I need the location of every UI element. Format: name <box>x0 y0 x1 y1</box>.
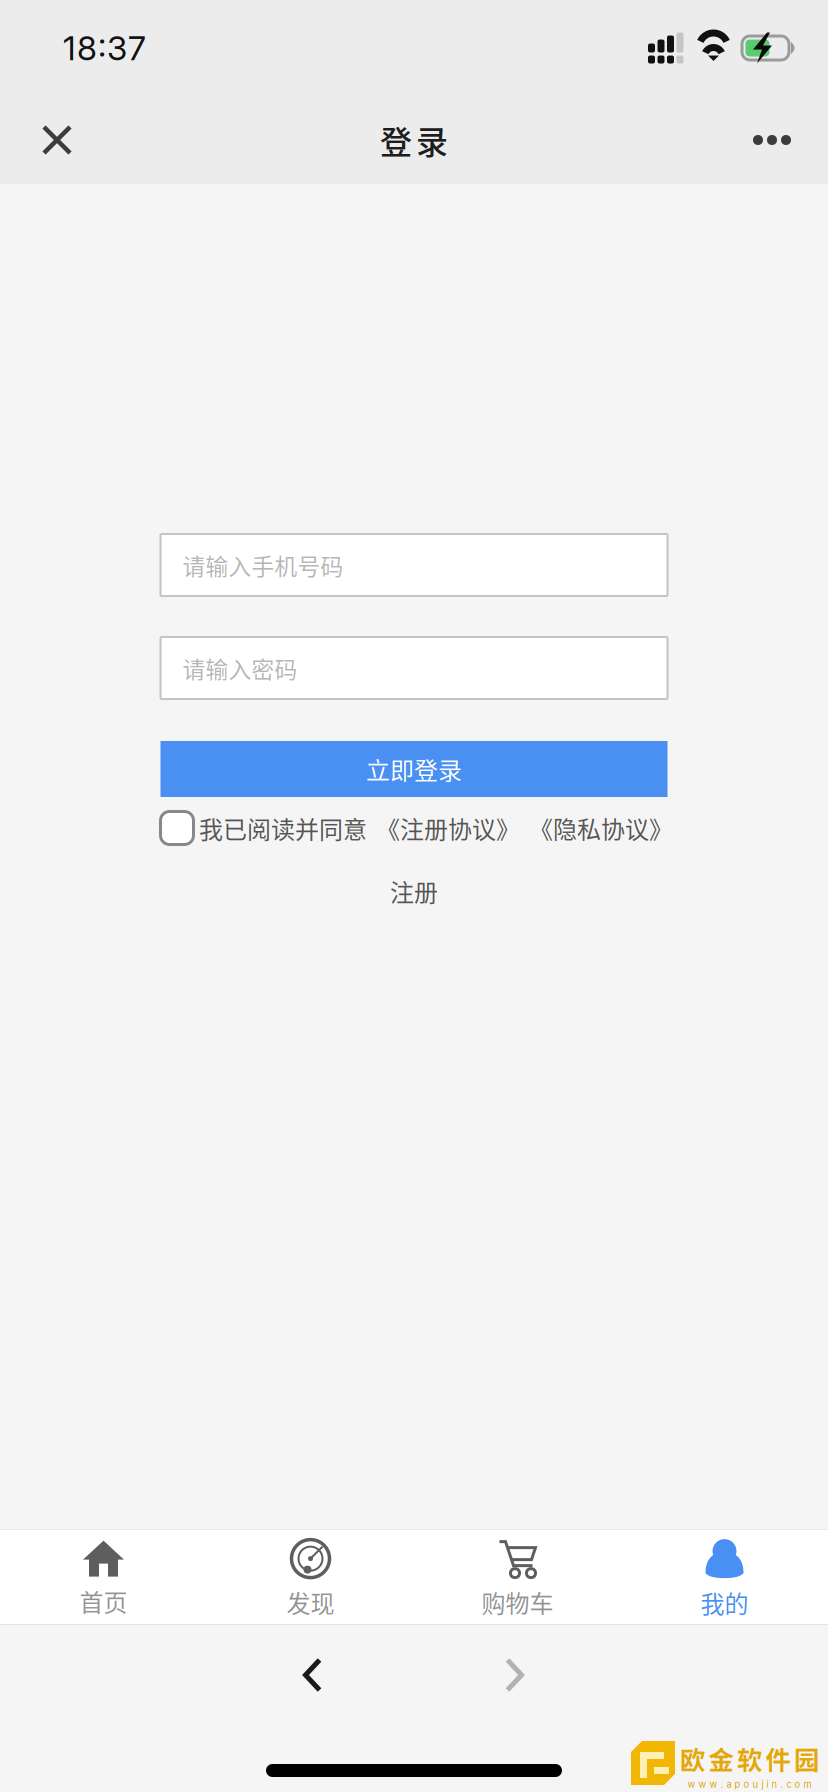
button[interactable]: 发现 <box>207 1529 414 1625</box>
staticText: 注册 <box>390 874 438 908</box>
button[interactable]: Back <box>272 1645 353 1705</box>
staticText: 登录 <box>380 117 448 163</box>
button[interactable]: Close <box>14 96 100 184</box>
button[interactable]: More <box>734 96 810 184</box>
staticText: 购物车 <box>481 1585 553 1619</box>
button[interactable]: 注册 <box>160 871 667 911</box>
staticText: 首页 <box>79 1584 127 1618</box>
button[interactable]: Forward <box>474 1645 555 1705</box>
staticText: 我的 <box>700 1585 748 1620</box>
button[interactable]: 购物车 <box>414 1529 621 1625</box>
staticText: 我已阅读并同意 <box>199 811 367 845</box>
staticText: 欧金软件园 <box>680 1740 819 1777</box>
staticText: 《隐私协议》 <box>529 811 673 845</box>
staticText: 发现 <box>286 1585 334 1619</box>
button[interactable]: 《注册协议》 <box>376 811 520 845</box>
button[interactable]: Agree to terms <box>155 809 199 847</box>
staticText: 《注册协议》 <box>376 811 520 845</box>
button[interactable]: 《隐私协议》 <box>529 811 673 845</box>
staticText: 18:37 <box>63 28 146 68</box>
staticText: 请输入手机号码 <box>182 549 343 581</box>
staticText: w w w . a p o u j i n . c o m <box>687 1779 811 1790</box>
staticText: 立即登录 <box>366 752 462 786</box>
button[interactable]: 首页 <box>0 1529 207 1625</box>
button[interactable]: 立即登录 <box>160 741 667 797</box>
staticText: 请输入密码 <box>182 652 297 684</box>
button[interactable]: 我的 <box>621 1529 828 1625</box>
